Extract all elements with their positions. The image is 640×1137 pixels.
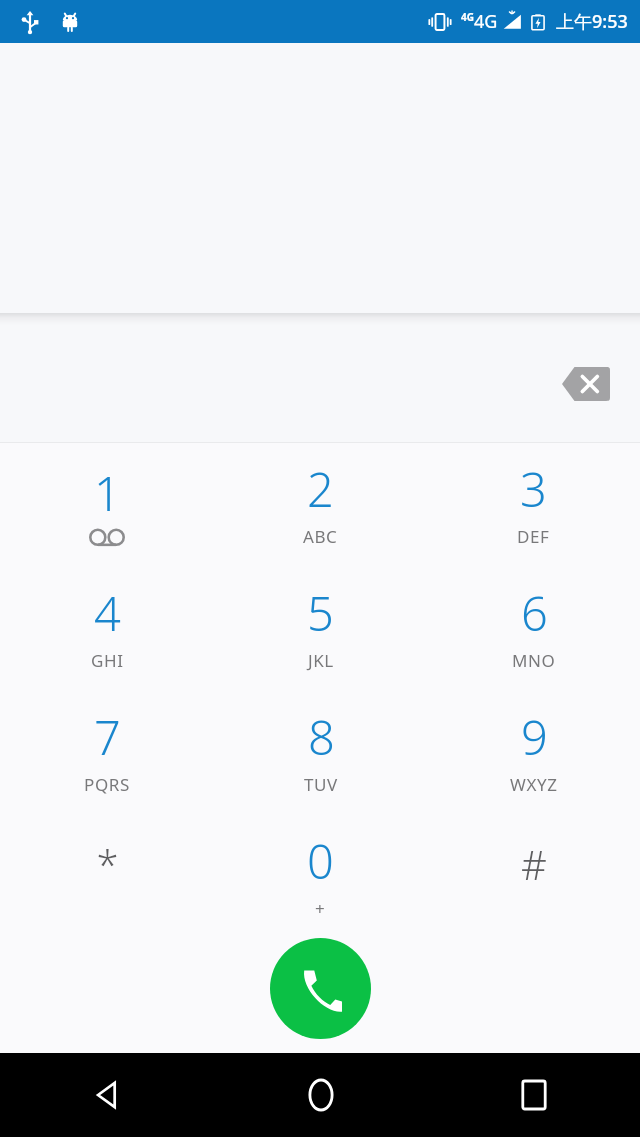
staticText: 4: [94, 581, 121, 645]
staticText: 8: [308, 705, 335, 769]
staticText: 4G: [474, 9, 498, 34]
staticText: 9: [521, 705, 548, 769]
staticText: ABC: [303, 525, 338, 548]
staticText: 3: [520, 457, 547, 521]
staticText: JKL: [308, 649, 334, 672]
button[interactable]: 0: [214, 814, 427, 938]
button[interactable]: 8: [214, 690, 427, 814]
button[interactable]: 1: [0, 443, 214, 566]
button[interactable]: Home: [214, 1053, 427, 1137]
staticText: 7: [94, 705, 121, 769]
staticText: 0: [307, 829, 334, 893]
staticText: WXYZ: [510, 773, 558, 796]
button[interactable]: Backspace: [550, 353, 622, 415]
staticText: GHI: [91, 649, 124, 672]
button[interactable]: 5: [214, 566, 427, 690]
staticText: 1: [94, 461, 121, 525]
button[interactable]: 6: [427, 566, 640, 690]
staticText: TUV: [304, 773, 338, 796]
button[interactable]: 4: [0, 566, 214, 690]
staticText: 5: [307, 581, 334, 645]
staticText: 4G: [461, 10, 474, 24]
button[interactable]: 7: [0, 690, 214, 814]
button[interactable]: 9: [427, 690, 640, 814]
button[interactable]: Recents: [427, 1053, 640, 1137]
button[interactable]: #: [427, 814, 640, 938]
button[interactable]: *: [0, 814, 214, 938]
staticText: 2: [307, 457, 334, 521]
staticText: PQRS: [84, 773, 130, 796]
button[interactable]: Call: [270, 938, 371, 1039]
button[interactable]: Back: [0, 1053, 214, 1137]
button[interactable]: 3: [427, 443, 640, 566]
staticText: +: [315, 897, 326, 920]
button[interactable]: 2: [214, 443, 427, 566]
staticText: MNO: [512, 649, 556, 672]
staticText: *: [96, 837, 119, 891]
staticText: #: [521, 837, 547, 891]
staticText: DEF: [517, 525, 550, 548]
staticText: 6: [521, 581, 548, 645]
staticText: 上午9:53: [556, 9, 628, 34]
